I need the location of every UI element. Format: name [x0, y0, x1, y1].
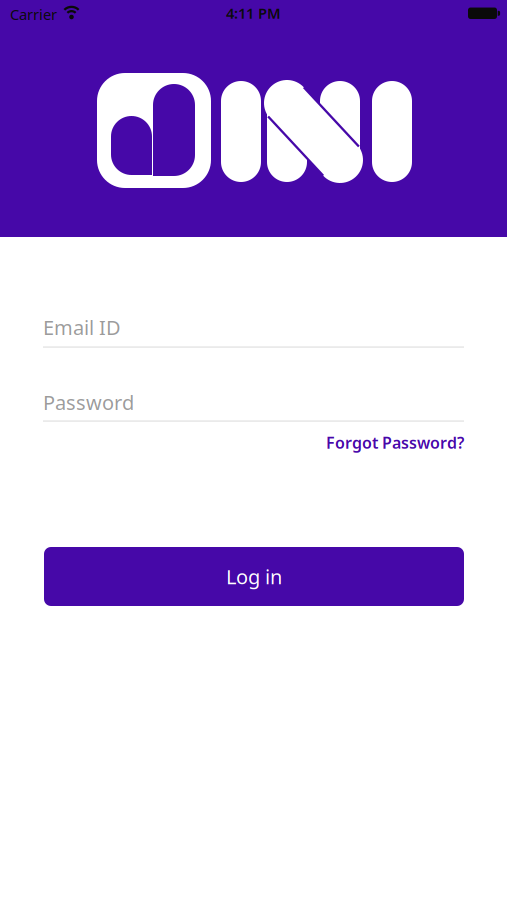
button[interactable]: Forgot Password?: [326, 432, 464, 453]
staticText: Email ID: [43, 314, 121, 341]
button[interactable]: Log in: [44, 547, 464, 606]
staticText: 4:11 PM: [226, 3, 281, 23]
staticText: Password: [43, 389, 134, 416]
staticText: Carrier: [10, 4, 57, 24]
button[interactable]: Password: [43, 389, 464, 422]
staticText: Forgot Password?: [326, 432, 464, 453]
button[interactable]: Email ID: [43, 314, 464, 348]
staticText: Log in: [226, 563, 282, 590]
